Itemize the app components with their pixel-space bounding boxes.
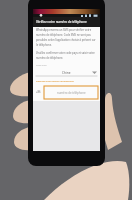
button[interactable]: +86 [35, 87, 42, 97]
staticText: numéro de téléphone [57, 91, 86, 95]
staticText: +86 [36, 90, 41, 94]
staticText: Veuillez confirmer votre code pays et sa… [36, 51, 98, 59]
staticText: Saisissez votre numéro de téléphone [36, 80, 74, 83]
staticText: Chine [62, 71, 71, 75]
staticText: WhatsApp enverra un SMS pour vérifier vo… [36, 28, 98, 46]
staticText: Vérifiez votre numéro de téléphone [36, 20, 87, 24]
button[interactable]: numéro de téléphone [44, 86, 98, 99]
button[interactable]: Chine [33, 68, 100, 77]
button[interactable]: Vérifiez votre numéro de téléphone [33, 17, 100, 27]
staticText: Code pays [36, 64, 47, 67]
